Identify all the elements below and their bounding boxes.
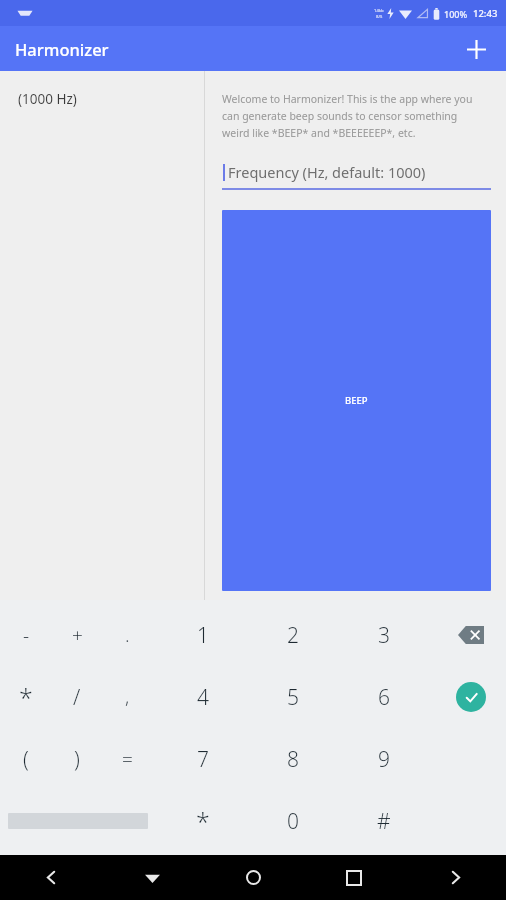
staticText: = <box>122 746 133 772</box>
button[interactable]: 3 <box>359 604 409 666</box>
button[interactable]: Frequency (Hz, default: 1000) <box>222 162 491 190</box>
button[interactable]: Backspace <box>446 604 496 666</box>
button[interactable]: BEEP <box>222 210 491 591</box>
staticText: , <box>125 684 130 710</box>
staticText: 4 <box>197 683 209 712</box>
staticText: 8/S <box>376 14 383 20</box>
button[interactable]: Recents <box>324 855 384 900</box>
staticText: BEEP <box>345 394 368 407</box>
button[interactable]: Add <box>454 27 498 71</box>
button[interactable]: 0 <box>268 790 318 852</box>
staticText: + <box>72 622 83 648</box>
staticText: Welcome to Harmonizer! This is the app w… <box>222 92 473 106</box>
staticText: ) <box>74 745 80 774</box>
button[interactable]: , <box>102 666 152 728</box>
button[interactable]: ( <box>1 728 51 790</box>
staticText: 2 <box>287 621 299 650</box>
staticText: ( <box>23 745 29 774</box>
button[interactable]: 4 <box>178 666 228 728</box>
button[interactable]: Home <box>223 855 283 900</box>
staticText: 8 <box>287 745 299 774</box>
button[interactable]: Hide keyboard <box>122 855 182 900</box>
staticText: # <box>377 807 391 836</box>
staticText: (1000 Hz) <box>18 90 77 108</box>
button[interactable]: 2 <box>268 604 318 666</box>
staticText: 5 <box>287 683 299 712</box>
staticText: * <box>19 680 33 714</box>
button[interactable]: Confirm <box>446 666 496 728</box>
staticText: weird like *BEEP* and *BEEEEEEP*, etc. <box>222 126 416 140</box>
button[interactable]: 5 <box>268 666 318 728</box>
staticText: 0 <box>287 807 299 836</box>
staticText: can generate beep sounds to censor somet… <box>222 109 458 123</box>
staticText: 1 <box>197 621 209 650</box>
staticText: * <box>196 804 210 838</box>
button[interactable]: - <box>1 604 51 666</box>
button[interactable]: 7 <box>178 728 228 790</box>
staticText: 9 <box>378 745 390 774</box>
staticText: Frequency (Hz, default: 1000) <box>228 162 426 182</box>
button[interactable]: = <box>102 728 152 790</box>
staticText: - <box>23 622 30 648</box>
button[interactable]: * <box>1 666 51 728</box>
staticText: 6 <box>378 683 390 712</box>
button[interactable]: 8 <box>268 728 318 790</box>
button[interactable]: 1 <box>178 604 228 666</box>
staticText: 7 <box>197 745 209 774</box>
staticText: 12:43 <box>473 7 498 20</box>
button[interactable]: # <box>359 790 409 852</box>
button[interactable]: ) <box>52 728 102 790</box>
staticText: . <box>125 622 130 648</box>
button[interactable]: . <box>102 604 152 666</box>
button[interactable]: Previous <box>21 855 81 900</box>
button[interactable]: + <box>52 604 102 666</box>
button[interactable]: Next <box>425 855 485 900</box>
button[interactable]: * <box>178 790 228 852</box>
button[interactable]: / <box>52 666 102 728</box>
staticText: Harmonizer <box>15 38 109 60</box>
staticText: 3 <box>378 621 390 650</box>
staticText: 14kb <box>374 8 384 14</box>
staticText: 100% <box>444 8 468 20</box>
staticText: / <box>73 683 81 712</box>
button[interactable]: 6 <box>359 666 409 728</box>
button[interactable]: 9 <box>359 728 409 790</box>
